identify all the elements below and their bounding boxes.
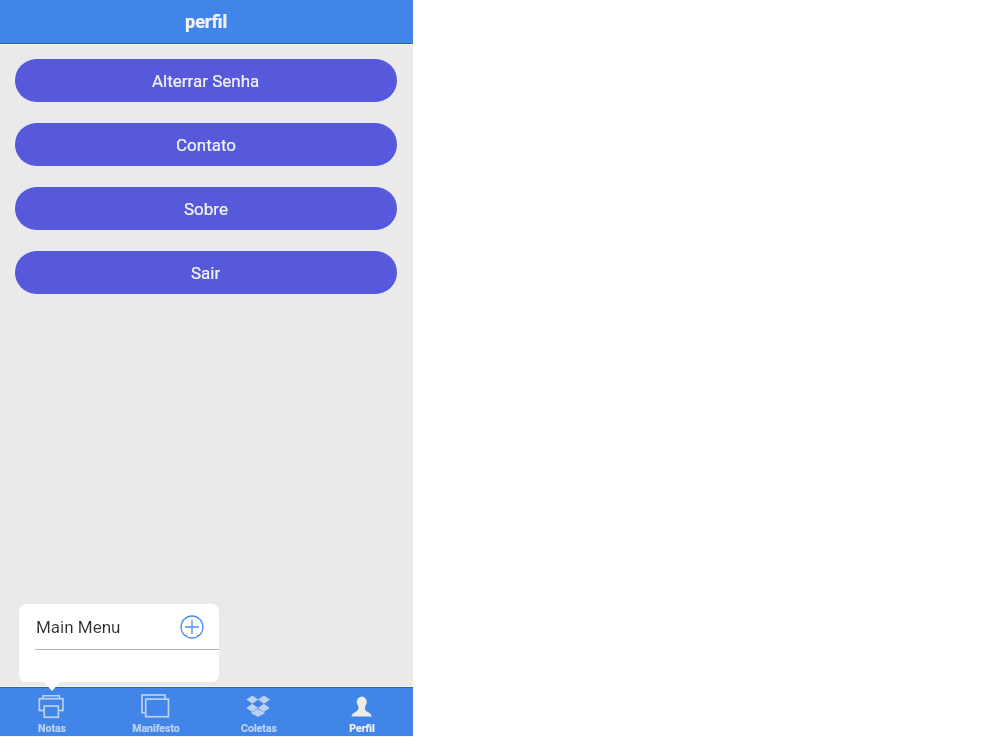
button[interactable]: Coletas bbox=[207, 688, 310, 736]
staticText: Alterrar Senha bbox=[152, 71, 260, 91]
staticText: perfil bbox=[185, 11, 228, 32]
staticText: Sair bbox=[191, 263, 221, 283]
button[interactable]: Sair bbox=[15, 251, 397, 294]
button[interactable]: Perfil bbox=[310, 688, 413, 736]
button[interactable]: Contato bbox=[15, 123, 397, 166]
button[interactable]: Manifesto bbox=[104, 688, 207, 736]
staticText: Main Menu bbox=[36, 617, 121, 637]
button[interactable]: Sobre bbox=[15, 187, 397, 230]
button[interactable]: Alterrar Senha bbox=[15, 59, 397, 102]
staticText: Perfil bbox=[349, 722, 375, 734]
staticText: Sobre bbox=[184, 199, 228, 219]
staticText: Manifesto bbox=[132, 722, 180, 734]
button[interactable]: Add bbox=[180, 615, 204, 639]
staticText: Contato bbox=[176, 135, 237, 155]
staticText: Notas bbox=[38, 722, 66, 734]
button[interactable]: Main Menu bbox=[19, 604, 219, 649]
staticText: Coletas bbox=[241, 722, 277, 734]
button[interactable]: Notas bbox=[0, 688, 104, 736]
